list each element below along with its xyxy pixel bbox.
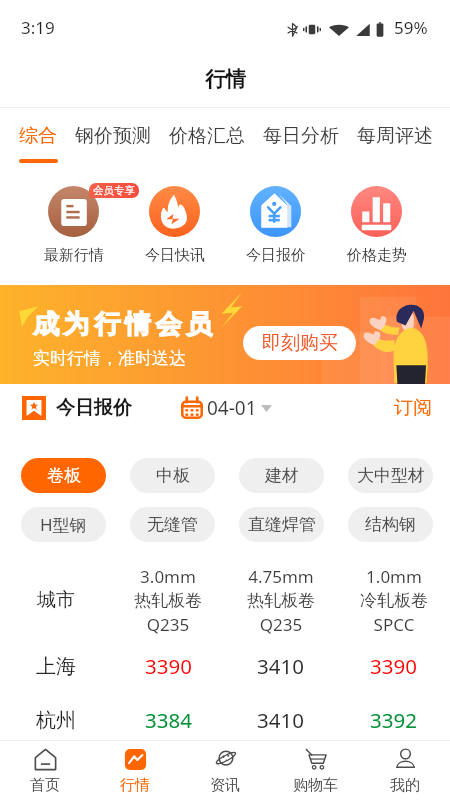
- button[interactable]: 价格汇总: [169, 108, 245, 163]
- staticText: 04-01: [207, 395, 257, 421]
- button[interactable]: 卷板: [21, 458, 106, 493]
- staticText: 建材: [265, 465, 299, 486]
- staticText: 4.75mm 热轧板卷 Q235: [247, 565, 315, 636]
- staticText: 今日报价: [56, 396, 132, 420]
- staticText: 综合: [19, 124, 57, 148]
- button[interactable]: 每日分析: [263, 108, 339, 163]
- button[interactable]: 订阅: [394, 396, 432, 420]
- staticText: 实时行情，准时送达: [33, 348, 186, 369]
- button[interactable]: 会员专享: [23, 166, 124, 265]
- staticText: 3:19: [21, 16, 55, 39]
- staticText: 杭州: [36, 708, 76, 733]
- staticText: 今日报价: [246, 246, 306, 265]
- button[interactable]: 成为行情会员: [0, 285, 450, 384]
- button[interactable]: 今日快讯: [124, 166, 225, 265]
- button[interactable]: 04-01: [181, 395, 272, 421]
- staticText: 结构钢: [365, 514, 416, 535]
- staticText: 上海: [36, 654, 76, 679]
- staticText: 直缝焊管: [248, 514, 316, 535]
- staticText: 价格汇总: [169, 124, 245, 148]
- button[interactable]: 钢价预测: [75, 108, 151, 163]
- staticText: 3410: [257, 652, 304, 680]
- staticText: 最新行情: [44, 246, 104, 265]
- button[interactable]: 杭州: [0, 693, 450, 747]
- button[interactable]: 今日报价: [225, 166, 326, 265]
- staticText: 即刻购买: [262, 331, 338, 355]
- staticText: 会员专享: [93, 184, 135, 197]
- button[interactable]: 即刻购买: [243, 326, 356, 360]
- button[interactable]: 结构钢: [348, 507, 433, 542]
- staticText: 大中型材: [357, 465, 425, 486]
- button[interactable]: 价格走势: [326, 166, 427, 265]
- staticText: 订阅: [394, 396, 432, 420]
- button[interactable]: 行情: [90, 741, 180, 800]
- staticText: 3392: [370, 706, 417, 734]
- staticText: 59%: [394, 16, 428, 37]
- staticText: 行情: [205, 66, 246, 92]
- button[interactable]: 综合: [18, 108, 57, 163]
- staticText: 今日快讯: [145, 246, 205, 265]
- button[interactable]: 中板: [130, 458, 215, 493]
- staticText: 首页: [30, 776, 60, 795]
- button[interactable]: 我的: [360, 741, 450, 800]
- staticText: 卷板: [47, 465, 81, 486]
- staticText: 成为行情会员: [33, 308, 217, 341]
- staticText: 资讯: [210, 776, 240, 795]
- staticText: 1.0mm 冷轧板卷 SPCC: [360, 565, 428, 636]
- staticText: 行情: [120, 776, 150, 795]
- staticText: 我的: [390, 776, 420, 795]
- button[interactable]: H型钢: [21, 507, 106, 542]
- button[interactable]: 资讯: [180, 741, 270, 800]
- staticText: 3410: [257, 706, 304, 734]
- button[interactable]: 无缝管: [130, 507, 215, 542]
- staticText: 3390: [370, 652, 417, 680]
- staticText: 钢价预测: [75, 124, 151, 148]
- button[interactable]: 购物车: [270, 741, 360, 800]
- button[interactable]: 建材: [239, 458, 324, 493]
- button[interactable]: 首页: [0, 741, 90, 800]
- staticText: 3390: [145, 652, 192, 680]
- staticText: 中板: [156, 465, 190, 486]
- button[interactable]: 每周评述: [357, 108, 433, 163]
- button[interactable]: 大中型材: [348, 458, 433, 493]
- staticText: 3384: [145, 706, 192, 734]
- staticText: 城市: [37, 588, 75, 612]
- button[interactable]: 上海: [0, 639, 450, 693]
- staticText: H型钢: [40, 513, 87, 536]
- staticText: 购物车: [293, 776, 338, 795]
- staticText: 价格走势: [347, 246, 407, 265]
- staticText: 无缝管: [147, 514, 198, 535]
- button[interactable]: 直缝焊管: [239, 507, 324, 542]
- staticText: 每周评述: [357, 124, 433, 148]
- staticText: 3.0mm 热轧板卷 Q235: [134, 565, 202, 636]
- staticText: 每日分析: [263, 124, 339, 148]
